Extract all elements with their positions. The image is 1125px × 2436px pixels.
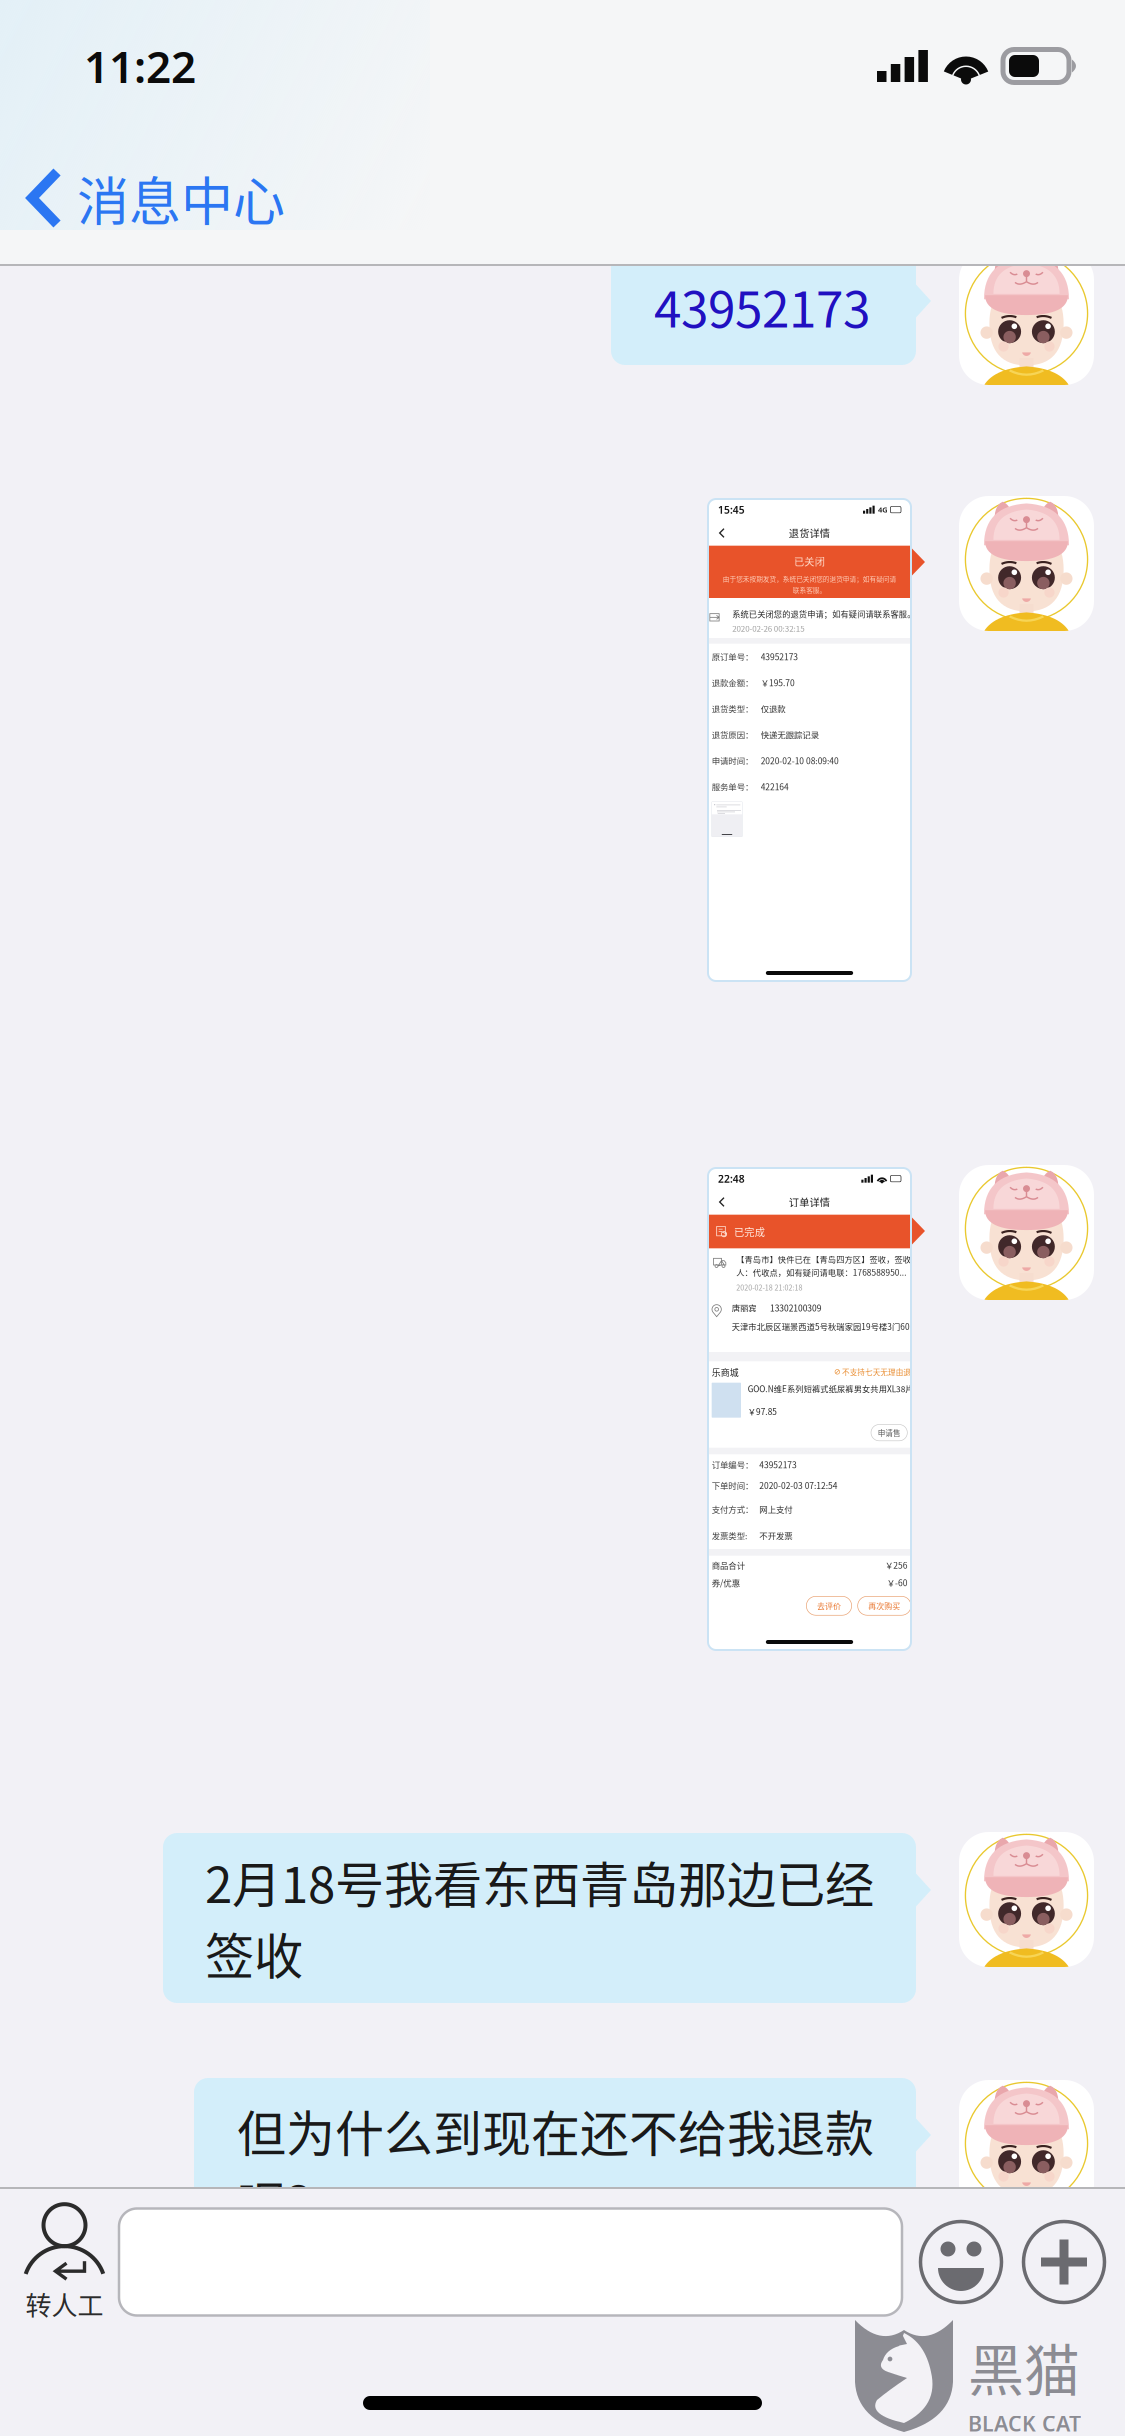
staticText: 已完成 <box>786 1336 879 1381</box>
staticText: 支付方式： <box>719 2173 844 2209</box>
button[interactable]: 但为什么到现在还不给我退款 呢？ <box>194 2078 931 2250</box>
staticText: 服务单号： <box>719 1344 844 1380</box>
staticText: ￥97.85 <box>827 1881 915 1916</box>
staticText: 人：代收点，如有疑问请电联：1768588950... <box>792 1463 1125 1498</box>
staticText: 转人工 <box>25 2285 103 2323</box>
staticText: 消息中心 <box>77 160 285 236</box>
staticText: 不开发票 <box>862 2253 962 2289</box>
staticText: 系统已关闭您的退货申请；如有疑问请联系客服。 <box>780 825 1125 861</box>
staticText: 原订单号： <box>719 954 844 990</box>
button[interactable]: 输入消息 <box>119 2208 902 2315</box>
staticText: 退货详情 <box>950 579 1074 623</box>
button[interactable]: 消息中心 <box>0 132 1125 264</box>
staticText: 天津市北辰区瑞景西道5号秋瑞家园19号楼3门602 <box>779 1626 1125 1661</box>
staticText: 13302100309 <box>894 1569 1048 1606</box>
staticText: 422164 <box>866 1344 950 1380</box>
staticText: 15:45 <box>738 511 818 551</box>
staticText: 43952173 <box>654 270 870 342</box>
staticText: 11:22 <box>84 37 196 95</box>
staticText: 网上支付 <box>862 2173 962 2209</box>
staticText: 2020-02-26 00:32:15 <box>780 870 997 904</box>
staticText: 22:48 <box>738 1180 818 1220</box>
staticText: 由于您未按期发货，系统已关闭您的退货申请；如有疑问请 <box>752 723 1125 752</box>
staticText: 2020-02-18 21:02:18 <box>792 1510 991 1541</box>
staticText: 2020-02-03 07:12:54 <box>862 2102 1096 2138</box>
staticText: 订单详情 <box>950 1248 1074 1292</box>
staticText: 2020-02-10 08:09:40 <box>866 1266 1100 1302</box>
button[interactable]: 43952173 <box>611 250 931 365</box>
staticText: 快递无跟踪记录 <box>866 1188 1041 1224</box>
button[interactable]: 2月18号我看东西青岛那边已经 签收 <box>163 1833 931 2003</box>
staticText: 黑猫 <box>968 2326 1080 2407</box>
staticText: 但为什么到现在还不给我退款 呢？ <box>237 2095 874 2237</box>
staticText: 唐丽宾 <box>779 1569 854 1606</box>
button[interactable]: 转人工 <box>10 2189 119 2335</box>
staticText: 43952173 <box>866 954 978 990</box>
button[interactable]: 更多 <box>1013 2189 1115 2335</box>
staticText: 下单时间： <box>719 2102 844 2138</box>
staticText: 券/优惠 <box>719 2394 804 2430</box>
staticText: GOO.N维E系列短裤式纸尿裤男女共用XL38片 <box>827 1812 1125 1848</box>
button[interactable]: 表情 <box>902 2189 1013 2335</box>
staticText: 2月18号我看东西青岛那边已经 签收 <box>205 1846 874 1988</box>
staticText: 申请时间： <box>719 1266 844 1302</box>
staticText: BLACK CAT <box>968 2409 1081 2436</box>
staticText: 【青岛市】快件已在【青岛四方区】签收，签收 <box>792 1423 1125 1459</box>
staticText: 退货原因： <box>719 1188 844 1224</box>
